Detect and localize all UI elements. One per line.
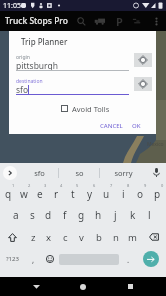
staticText: z xyxy=(31,231,36,244)
staticText: p xyxy=(154,187,161,201)
staticText: 8 xyxy=(127,183,130,188)
staticText: e xyxy=(37,187,43,201)
button[interactable]: m xyxy=(124,226,141,248)
staticText: sorry xyxy=(114,168,133,178)
button[interactable]: Avoid Tolls xyxy=(59,103,114,114)
button[interactable]: Shift xyxy=(0,226,25,248)
button[interactable]: y xyxy=(81,182,98,204)
button[interactable]: Emoji xyxy=(42,248,58,270)
button[interactable]: OK xyxy=(130,120,143,132)
staticText: , xyxy=(32,254,35,265)
staticText: 11:05 xyxy=(3,1,21,11)
staticText: pittsburgh xyxy=(16,60,59,72)
staticText: u xyxy=(103,187,110,201)
staticText: 0 xyxy=(161,183,164,188)
button[interactable]: f xyxy=(56,204,73,226)
staticText: 3 xyxy=(44,183,47,188)
staticText: 2 xyxy=(28,183,31,188)
button[interactable]: Search xyxy=(73,11,89,31)
staticText: Mexico xyxy=(147,141,164,148)
staticText: OK xyxy=(132,122,141,130)
button[interactable]: Pick on map xyxy=(134,53,152,67)
button[interactable]: q xyxy=(0,182,16,204)
staticText: . xyxy=(127,254,130,265)
staticText: j xyxy=(114,208,117,222)
button[interactable]: . xyxy=(120,248,136,270)
staticText: b xyxy=(96,231,102,244)
button[interactable]: l xyxy=(141,204,158,226)
staticText: m xyxy=(128,231,137,244)
button[interactable]: h xyxy=(90,204,107,226)
button[interactable]: u xyxy=(98,182,115,204)
button[interactable]: More options xyxy=(149,11,163,31)
button[interactable]: i xyxy=(115,182,132,204)
button[interactable]: ?123 xyxy=(0,248,25,270)
button[interactable]: e xyxy=(32,182,48,204)
button[interactable]: t xyxy=(64,182,81,204)
staticText: g xyxy=(78,208,85,222)
button[interactable]: c xyxy=(57,226,73,248)
button[interactable]: CANCEL xyxy=(98,120,125,132)
button[interactable]: sorry xyxy=(100,163,146,182)
button[interactable]: r xyxy=(48,182,64,204)
staticText: r xyxy=(54,187,59,201)
staticText: k xyxy=(130,208,136,222)
staticText: CANCEL xyxy=(100,122,123,130)
button[interactable]: Truck stops xyxy=(92,11,108,31)
button[interactable]: Home xyxy=(72,277,94,296)
staticText: 7 xyxy=(110,183,113,188)
button[interactable]: o xyxy=(132,182,149,204)
button[interactable]: g xyxy=(73,204,90,226)
button[interactable]: b xyxy=(90,226,107,248)
staticText: d xyxy=(45,208,52,222)
staticText: w xyxy=(20,187,28,201)
staticText: v xyxy=(79,231,84,244)
button[interactable]: x xyxy=(41,226,57,248)
button[interactable]: so xyxy=(59,163,99,182)
button[interactable]: sfo xyxy=(20,163,58,182)
button[interactable]: d xyxy=(40,204,56,226)
button[interactable]: n xyxy=(107,226,124,248)
button[interactable]: k xyxy=(124,204,141,226)
staticText: Truck Stops Pro xyxy=(5,15,68,27)
button[interactable]: Voice input xyxy=(146,163,166,182)
staticText: 4 xyxy=(60,183,63,188)
button[interactable]: v xyxy=(73,226,90,248)
staticText: q xyxy=(5,187,12,201)
staticText: ?123 xyxy=(6,255,19,263)
button[interactable]: a xyxy=(8,204,24,226)
button[interactable]: Back xyxy=(25,277,47,296)
button[interactable]: Backspace xyxy=(141,226,166,248)
staticText: P xyxy=(116,14,123,29)
staticText: x xyxy=(46,231,52,244)
button[interactable]: s xyxy=(24,204,40,226)
staticText: i xyxy=(122,187,125,201)
button[interactable]: Parking xyxy=(111,11,127,31)
staticText: 5 xyxy=(76,183,79,188)
button[interactable]: w xyxy=(16,182,32,204)
button[interactable]: Pick on map xyxy=(134,77,152,91)
staticText: 1 xyxy=(12,183,15,188)
staticText: 6 xyxy=(93,183,96,188)
staticText: sfo xyxy=(16,84,29,96)
staticText: f xyxy=(63,208,67,222)
button[interactable]: More suggestions xyxy=(0,163,20,182)
button[interactable]: z xyxy=(25,226,41,248)
staticText: destination xyxy=(16,78,43,85)
staticText: h xyxy=(95,208,102,222)
staticText: origin xyxy=(16,54,30,61)
staticText: y xyxy=(87,187,93,201)
button[interactable]: , xyxy=(25,248,42,270)
staticText: c xyxy=(63,231,68,244)
staticText: Avoid Tolls xyxy=(72,104,110,114)
staticText: so xyxy=(75,168,84,178)
staticText: n xyxy=(113,231,119,244)
staticText: s xyxy=(30,208,35,222)
staticText: 9 xyxy=(144,183,147,188)
button[interactable]: p xyxy=(149,182,166,204)
button[interactable]: Enter xyxy=(136,248,166,270)
button[interactable]: j xyxy=(107,204,124,226)
button[interactable]: Recent apps xyxy=(119,277,141,296)
button[interactable]: Rest areas xyxy=(129,11,145,31)
